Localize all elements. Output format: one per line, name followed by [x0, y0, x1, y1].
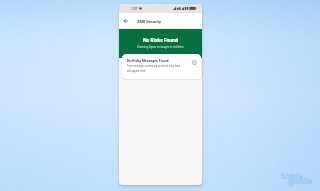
staticText: Text messages containing potential risky… — [127, 65, 181, 72]
button[interactable]: Back — [122, 17, 130, 25]
staticText: 1:37 — [131, 7, 138, 11]
staticText: Scanning Spam messages in real-time — [137, 45, 184, 48]
staticText: tom's — [281, 170, 304, 181]
staticText: No Risky Messages Found — [127, 59, 169, 63]
staticText: guide — [288, 175, 313, 186]
staticText: SMS Security — [137, 19, 161, 24]
button[interactable]: No Risky Messages Found — [122, 54, 201, 79]
staticText: No Risks Found — [143, 37, 178, 43]
